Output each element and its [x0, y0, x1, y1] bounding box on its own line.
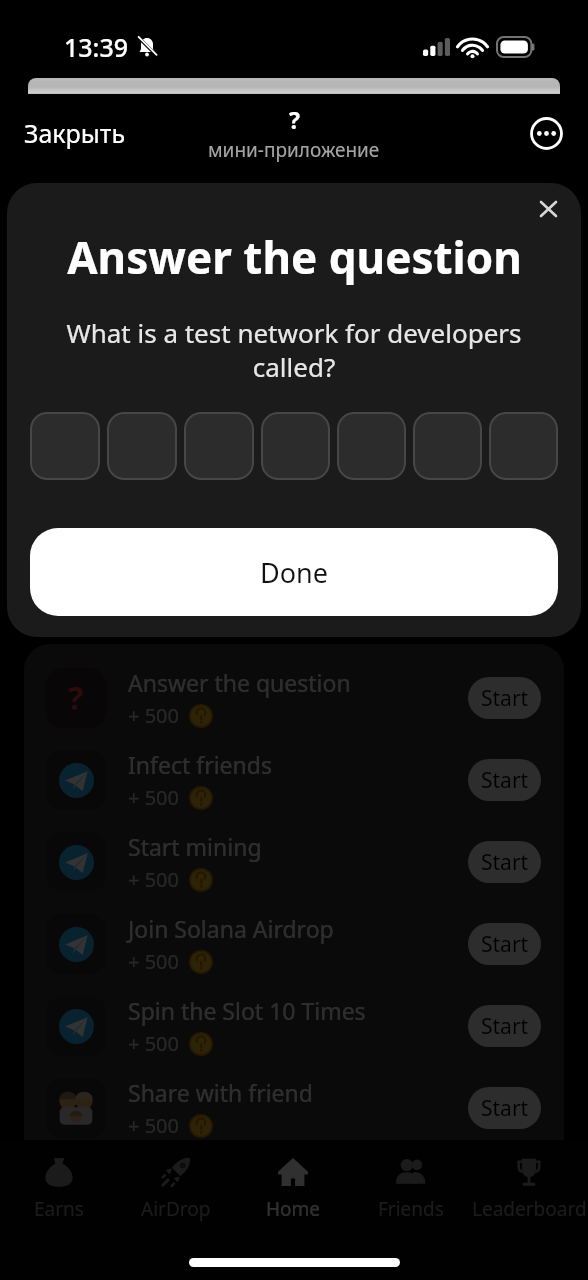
button[interactable]: Start — [468, 677, 541, 719]
button[interactable] — [107, 412, 177, 480]
button[interactable]: ? — [46, 657, 541, 739]
button[interactable]: Закрыть — [22, 110, 128, 156]
button[interactable]: Start — [468, 759, 541, 801]
staticText: ? — [68, 676, 84, 720]
staticText: Start — [481, 1012, 529, 1041]
button[interactable]: Home — [234, 1140, 352, 1235]
staticText: + 500 — [128, 784, 179, 811]
staticText: Spin the Slot 10 Times — [128, 995, 366, 1026]
staticText: ? — [289, 104, 300, 135]
staticText: 13:39 — [64, 30, 129, 64]
staticText: + 500 — [128, 702, 179, 729]
staticText: Start — [481, 766, 529, 795]
staticText: Leaderboard — [472, 1196, 587, 1222]
staticText: Start — [481, 930, 529, 959]
staticText: Share with friend — [128, 1077, 313, 1108]
button[interactable]: Start — [468, 923, 541, 965]
button[interactable]: Done — [30, 528, 558, 616]
button[interactable]: Join Solana Airdrop — [46, 903, 541, 985]
button[interactable]: Friends — [352, 1140, 470, 1235]
staticText: мини-приложение — [208, 137, 380, 163]
staticText: AirDrop — [141, 1196, 211, 1222]
staticText: + 500 — [128, 1030, 179, 1057]
button[interactable]: Start mining — [46, 821, 541, 903]
button[interactable]: Infect friends — [46, 739, 541, 821]
staticText: Start — [481, 684, 529, 713]
staticText: + 500 — [128, 866, 179, 893]
staticText: Join Solana Airdrop — [128, 913, 334, 944]
button[interactable]: Start — [468, 841, 541, 883]
button[interactable]: Start — [468, 1087, 541, 1129]
staticText: Answer the question — [67, 227, 522, 287]
staticText: What is a test network for developers ca… — [63, 315, 525, 384]
button[interactable]: AirDrop — [117, 1140, 234, 1235]
staticText: Start — [481, 848, 529, 877]
button[interactable] — [489, 412, 558, 480]
button[interactable] — [337, 412, 406, 480]
button[interactable]: Spin the Slot 10 Times — [46, 985, 541, 1067]
button[interactable]: More options — [524, 111, 568, 155]
staticText: Home — [266, 1196, 321, 1222]
staticText: + 500 — [128, 1112, 179, 1139]
button[interactable] — [30, 412, 100, 480]
button[interactable]: Share with friend — [46, 1067, 541, 1149]
button[interactable] — [413, 412, 482, 480]
button[interactable]: Close — [526, 187, 570, 231]
staticText: Infect friends — [128, 749, 272, 780]
staticText: + 500 — [128, 948, 179, 975]
staticText: Done — [260, 554, 328, 591]
button[interactable]: Leaderboard — [470, 1140, 588, 1235]
button[interactable] — [184, 412, 254, 480]
staticText: Закрыть — [24, 116, 126, 150]
staticText: Answer the question — [128, 667, 351, 698]
staticText: Friends — [378, 1196, 444, 1222]
staticText: Earns — [34, 1196, 84, 1222]
button[interactable] — [261, 412, 330, 480]
staticText: Start mining — [128, 831, 262, 862]
staticText: Start — [481, 1094, 529, 1123]
button[interactable]: Start — [468, 1005, 541, 1047]
button[interactable]: Earns — [0, 1140, 117, 1235]
